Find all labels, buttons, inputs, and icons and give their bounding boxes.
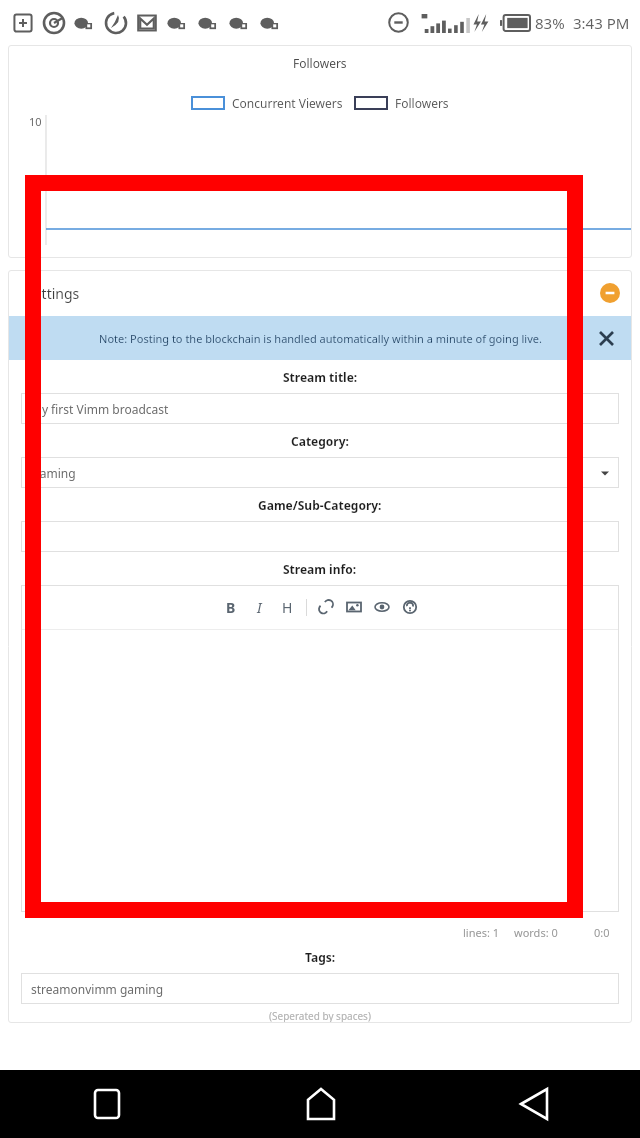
button[interactable]: Editor action: [273, 593, 301, 621]
button[interactable]: streamonvimm gaming: [21, 973, 619, 1004]
staticText: words: 0: [514, 925, 558, 940]
staticText: Stream info:: [283, 561, 357, 577]
staticText: B: [226, 598, 236, 617]
staticText: streamonvimm gaming: [31, 981, 164, 997]
button[interactable]: Collapse settings: [600, 283, 620, 303]
staticText: lines: 1: [463, 925, 500, 940]
staticText: Gaming: [31, 465, 76, 481]
button[interactable]: Editor action: [217, 593, 245, 621]
button[interactable]: My first Vimm broadcast: [21, 393, 619, 424]
staticText: Concurrent Viewers: [232, 95, 343, 111]
staticText: Game/Sub-Category:: [258, 497, 382, 513]
staticText: H: [282, 598, 293, 617]
staticText: Settings: [26, 284, 80, 303]
staticText: Followers: [395, 95, 449, 111]
staticText: 0:0: [594, 925, 610, 940]
button[interactable]: Back: [427, 1070, 640, 1138]
button[interactable]: Home: [214, 1070, 427, 1138]
button[interactable]: Editor action: [368, 593, 396, 621]
staticText: 0: [35, 221, 42, 236]
staticText: (Seperated by spaces): [269, 1009, 371, 1023]
staticText: Tags:: [305, 949, 336, 965]
button[interactable]: Editor action: [340, 593, 368, 621]
staticText: Category:: [291, 433, 349, 449]
button[interactable]: Editor action: [396, 593, 424, 621]
button[interactable]: Editor action: [245, 593, 273, 621]
button[interactable]: Gaming: [21, 457, 619, 488]
button[interactable]: [21, 521, 619, 552]
button[interactable]: Recents: [0, 1070, 214, 1138]
staticText: 3:43 PM: [573, 13, 630, 33]
staticText: Note: Posting to the blockchain is handl…: [99, 331, 542, 346]
staticText: 10: [29, 114, 42, 129]
staticText: Stream title:: [283, 369, 358, 385]
staticText: 83%: [535, 13, 565, 33]
staticText: Followers: [293, 55, 347, 71]
button[interactable]: Editor action: [312, 593, 340, 621]
button[interactable]: Dismiss note: [594, 326, 618, 350]
staticText: My first Vimm broadcast: [31, 401, 169, 417]
staticText: I: [257, 598, 262, 617]
